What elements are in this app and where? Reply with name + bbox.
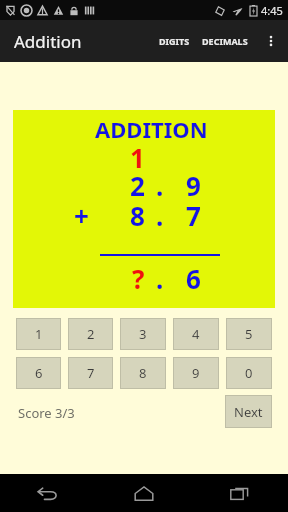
button[interactable]: DECIMALS [196, 25, 254, 57]
staticText: . [156, 168, 164, 203]
button[interactable]: 2 [69, 319, 112, 349]
staticText: 3 [139, 325, 147, 343]
staticText: . [156, 198, 164, 233]
staticText: 2 [87, 325, 95, 343]
button[interactable]: 3 [121, 319, 165, 349]
staticText: . [156, 261, 164, 296]
button[interactable]: 0 [227, 358, 271, 388]
staticText: 6 [186, 261, 201, 296]
staticText: 7 [186, 198, 201, 233]
button[interactable]: 1 [17, 319, 60, 349]
staticText: 1 [130, 140, 145, 175]
button[interactable]: Home [96, 474, 192, 512]
staticText: 2 [130, 168, 145, 203]
staticText: 8 [130, 198, 145, 233]
staticText: Next [234, 403, 263, 421]
button[interactable]: 4 [174, 319, 218, 349]
button[interactable]: More options [254, 24, 288, 58]
button[interactable]: 7 [69, 358, 112, 388]
button[interactable]: 6 [17, 358, 60, 388]
button[interactable]: Recent apps [192, 474, 288, 512]
staticText: + [74, 198, 89, 233]
button[interactable]: Next [226, 396, 271, 427]
button[interactable]: DIGITS [153, 25, 196, 57]
staticText: 6 [35, 364, 43, 382]
staticText: ADDITION [95, 114, 208, 144]
staticText: 1 [35, 325, 43, 343]
staticText: Score 3/3 [18, 404, 75, 422]
staticText: DIGITS [159, 35, 190, 47]
staticText: 4:45 [261, 3, 283, 18]
staticText: 0 [245, 364, 253, 382]
staticText: 9 [192, 364, 200, 382]
staticText: 7 [87, 364, 95, 382]
staticText: 5 [245, 325, 253, 343]
button[interactable]: Back [0, 474, 96, 512]
staticText: 8 [139, 364, 147, 382]
button[interactable]: 8 [121, 358, 165, 388]
button[interactable]: 9 [174, 358, 218, 388]
staticText: ? [132, 261, 145, 296]
button[interactable]: 5 [227, 319, 271, 349]
staticText: DECIMALS [202, 35, 248, 47]
staticText: Addition [14, 30, 82, 53]
staticText: 9 [186, 168, 201, 203]
staticText: 4 [192, 325, 200, 343]
